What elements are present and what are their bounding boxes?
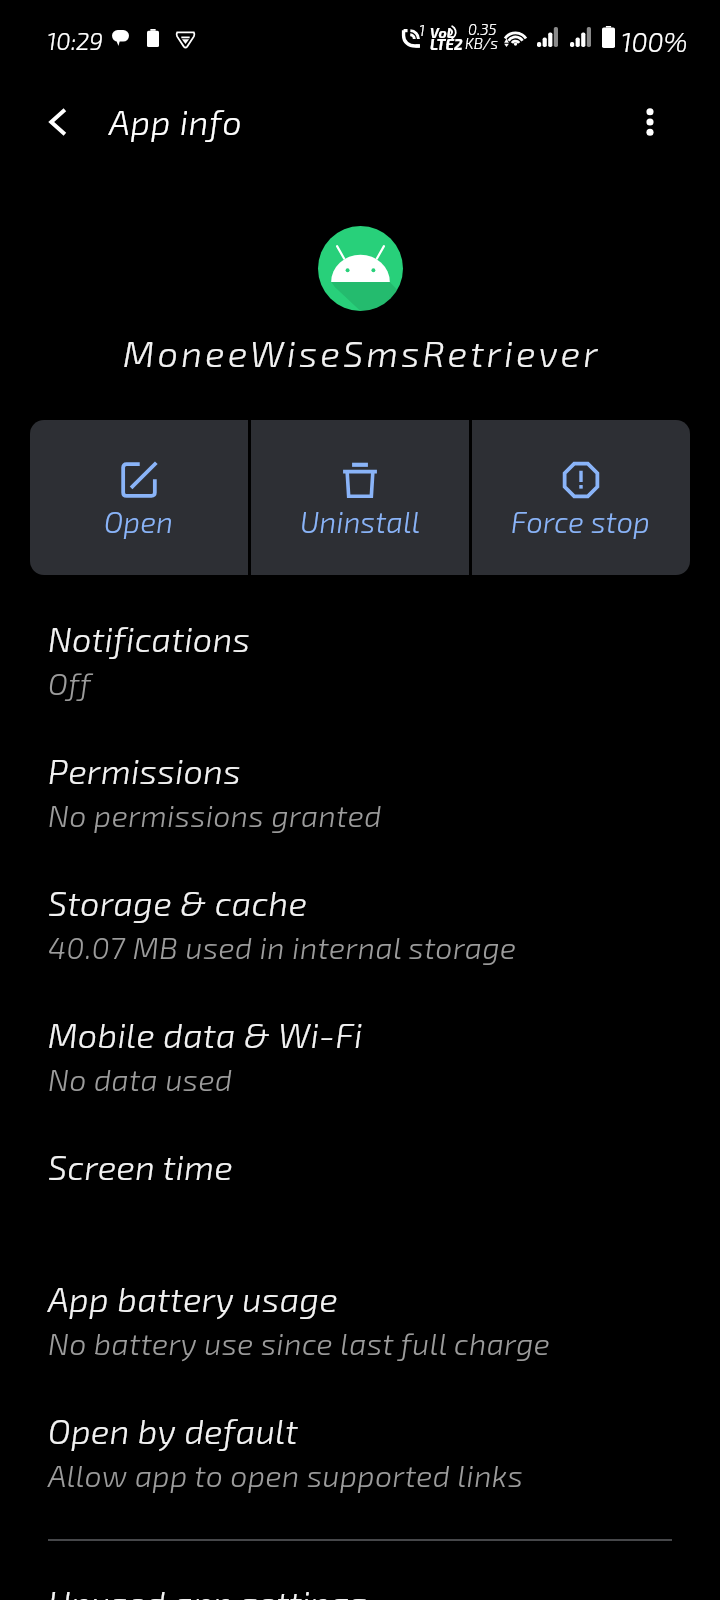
- staticText: Open by default: [48, 1410, 299, 1451]
- staticText: Off: [48, 665, 92, 701]
- staticText: Allow app to open supported links: [48, 1457, 524, 1493]
- staticText: No permissions granted: [48, 797, 382, 833]
- staticText: Open: [104, 504, 174, 539]
- staticText: No data used: [48, 1061, 233, 1097]
- staticText: Uninstall: [300, 504, 421, 539]
- button[interactable]: Open: [30, 420, 248, 575]
- button[interactable]: Screen time: [0, 1137, 720, 1269]
- button[interactable]: Uninstall: [251, 420, 469, 575]
- button[interactable]: Notifications: [0, 609, 720, 741]
- button[interactable]: Permissions: [0, 741, 720, 873]
- staticText: 100%: [621, 25, 688, 57]
- button[interactable]: Open by default: [0, 1401, 720, 1533]
- staticText: 10:29: [47, 26, 103, 55]
- staticText: 0.35: [468, 20, 497, 38]
- staticText: Screen time: [48, 1146, 234, 1187]
- staticText: No battery use since last full charge: [48, 1325, 551, 1361]
- staticText: Mobile data & Wi-Fi: [48, 1014, 363, 1055]
- staticText: 1: [419, 21, 425, 39]
- button[interactable]: Storage & cache: [0, 873, 720, 1005]
- staticText: App battery usage: [48, 1278, 339, 1319]
- staticText: App info: [109, 101, 243, 142]
- staticText: Permissions: [48, 750, 242, 791]
- staticText: Notifications: [48, 618, 251, 659]
- button[interactable]: App battery usage: [0, 1269, 720, 1401]
- staticText: Force stop: [511, 504, 651, 539]
- button[interactable]: Mobile data & Wi-Fi: [0, 1005, 720, 1137]
- staticText: Storage & cache: [48, 882, 308, 923]
- staticText: LTE2: [430, 35, 463, 53]
- staticText: 40.07 MB used in internal storage: [48, 929, 517, 965]
- button[interactable]: Force stop: [472, 420, 690, 575]
- staticText: VoL: [430, 24, 455, 41]
- staticText: MoneeWiseSmsRetriever: [123, 331, 601, 374]
- staticText: KB/s: [465, 34, 498, 52]
- button[interactable]: Back: [30, 94, 86, 150]
- staticText: Unused app settings: [48, 1582, 368, 1600]
- button[interactable]: More options: [622, 94, 678, 150]
